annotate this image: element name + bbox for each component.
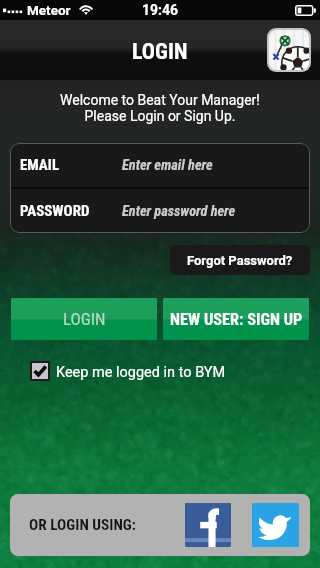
button[interactable]: Keep me logged in to BYM [30,361,226,381]
staticText: 19:46 [142,2,179,18]
button[interactable]: NEW USER: SIGN UP [163,298,309,340]
staticText: NEW USER: SIGN UP [170,310,303,329]
other: Battery [295,5,316,16]
staticText: Welcome to Beat Your Manager! Please Log… [0,92,320,124]
staticText: EMAIL [20,156,60,174]
button[interactable]: Log in with Twitter [252,503,299,547]
staticText: Forgot Password? [187,253,293,268]
staticText: OR LOGIN USING: [29,516,136,534]
staticText: Meteor [27,2,71,18]
button[interactable]: Beat Your Manager app icon [269,30,309,70]
button[interactable]: Log in with Facebook [185,503,231,547]
staticText: LOGIN [63,309,106,329]
staticText: Enter password here [122,203,236,220]
button[interactable]: Forgot Password? [170,245,310,275]
button[interactable]: EMAIL [10,143,310,187]
staticText: Enter email here [122,157,213,174]
button[interactable]: LOGIN [11,298,157,340]
button[interactable]: PASSWORD [10,189,310,233]
staticText: PASSWORD [20,202,90,220]
staticText: LOGIN [132,39,188,65]
staticText: Keep me logged in to BYM [56,364,226,381]
